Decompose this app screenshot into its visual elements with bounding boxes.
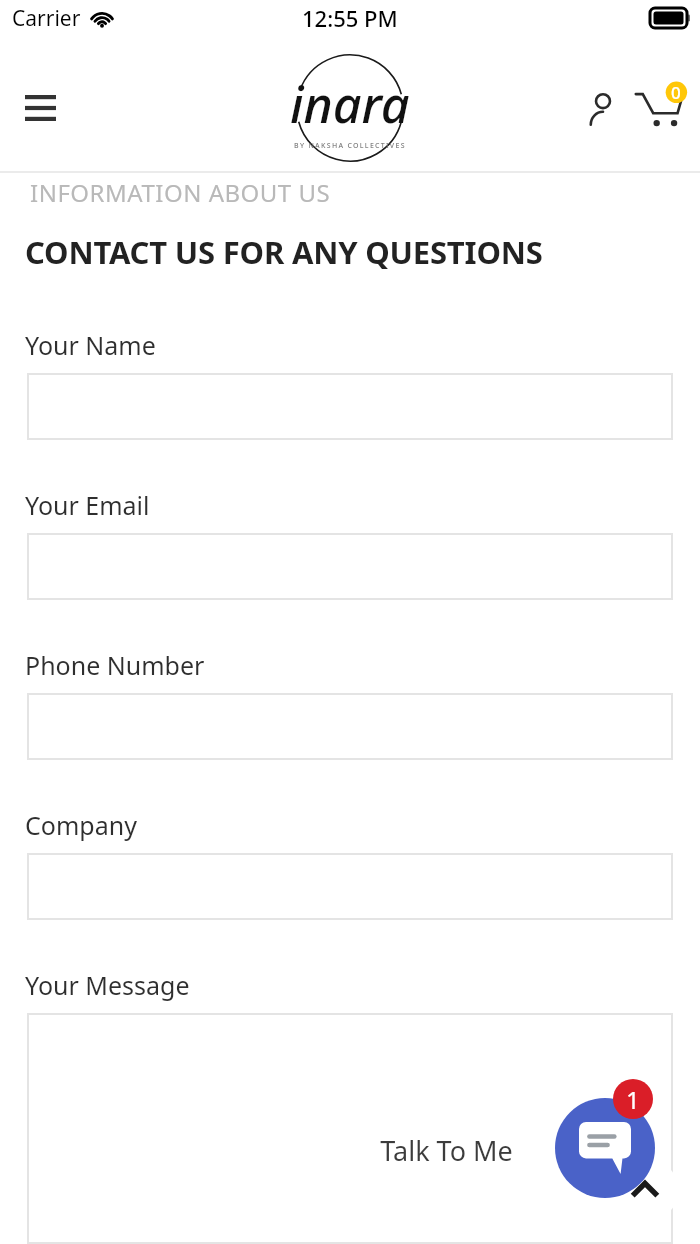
button[interactable] [27,1013,673,1244]
button[interactable]: Scroll to top [612,1157,678,1223]
staticText: INFORMATION ABOUT US [30,176,331,209]
button[interactable] [27,533,673,600]
button[interactable] [27,853,673,920]
button[interactable]: inara home [276,49,424,167]
button[interactable]: Menu [14,82,66,134]
button[interactable]: Talk To Me [350,1124,542,1176]
button[interactable]: Account [576,81,630,135]
staticText: Your Name [25,328,156,362]
staticText: inara [290,70,410,138]
button[interactable]: Cart, 0 items [630,79,688,137]
staticText: Your Email [25,488,150,522]
button[interactable]: Open chat [555,1098,655,1198]
staticText: Your Message [25,968,190,1002]
button[interactable] [27,373,673,440]
staticText: Phone Number [25,648,205,682]
button[interactable] [27,693,673,760]
staticText: Talk To Me [380,1132,513,1169]
staticText: 1 [626,1083,640,1116]
staticText: 0 [671,81,681,104]
staticText: CONTACT US FOR ANY QUESTIONS [25,231,543,273]
staticText: 12:55 PM [302,3,398,33]
staticText: BY NAKSHA COLLECTIVES [294,141,406,151]
staticText: Company [25,808,137,842]
staticText: Carrier [12,4,81,33]
